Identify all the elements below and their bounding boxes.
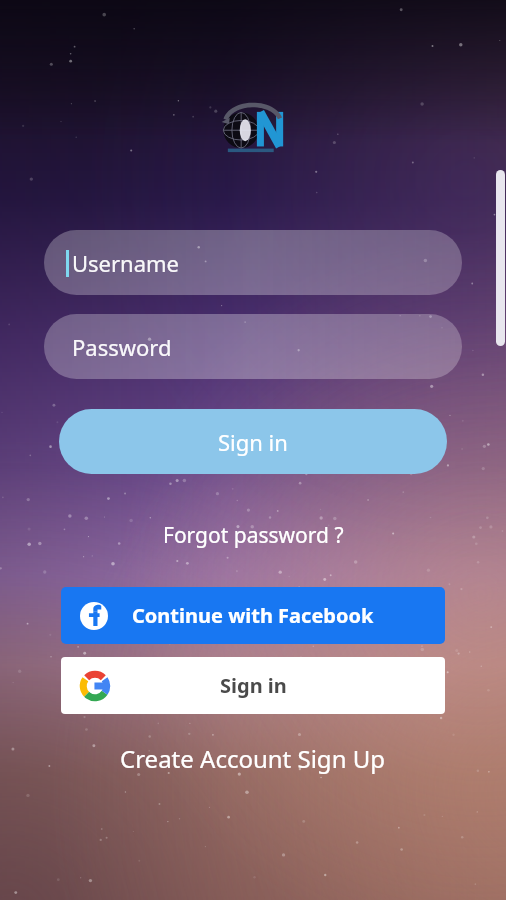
button[interactable]: Forgot password ?: [153, 517, 354, 554]
button[interactable]: Sign in: [59, 409, 447, 474]
staticText: Sign in: [218, 427, 288, 457]
staticText: Username: [72, 248, 180, 278]
button[interactable]: Sign in: [61, 657, 445, 714]
button[interactable]: Create Account Sign Up: [108, 738, 398, 779]
staticText: Sign in: [220, 672, 287, 699]
button[interactable]: Username: [44, 230, 462, 295]
button[interactable]: Password: [44, 314, 462, 379]
staticText: Password: [72, 332, 172, 362]
button[interactable]: Continue with Facebook: [61, 587, 445, 644]
staticText: Continue with Facebook: [132, 602, 374, 629]
